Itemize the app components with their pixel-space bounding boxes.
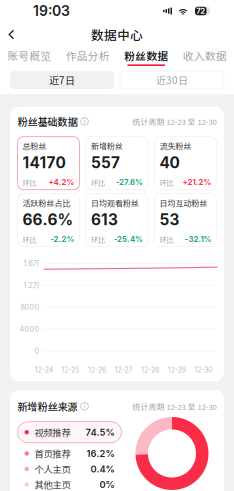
staticText: -2.2% — [50, 235, 74, 244]
staticText: 4000 — [19, 325, 39, 333]
staticText: 统计周期 12-23 至 12-30 — [132, 401, 216, 412]
staticText: 0 — [34, 347, 39, 355]
button[interactable]: 账号概览 — [0, 47, 58, 69]
staticText: 环比 — [159, 234, 173, 244]
staticText: 1.2万 — [23, 281, 39, 290]
staticText: 66.6% — [22, 210, 73, 229]
button[interactable]: 近30日 — [120, 71, 224, 89]
button[interactable]: 粉丝数据 — [117, 47, 175, 69]
button[interactable]: 近7日 — [10, 71, 114, 89]
staticText: i — [83, 402, 85, 410]
staticText: 环比 — [91, 234, 105, 244]
staticText: 0% — [99, 479, 114, 490]
staticText: 新增粉丝来源 — [17, 399, 77, 414]
staticText: 近7日 — [49, 73, 75, 87]
staticText: 粉丝数据 — [124, 48, 168, 63]
staticText: 12-24 — [35, 366, 53, 374]
staticText: 74.5% — [85, 427, 114, 438]
staticText: 新增粉丝 — [91, 140, 123, 151]
staticText: 环比 — [22, 234, 36, 244]
staticText: 数据中心 — [91, 25, 143, 44]
staticText: 流失粉丝 — [159, 140, 191, 151]
staticText: 个人主页 — [34, 462, 70, 476]
button[interactable]: 其他主页 — [17, 477, 121, 491]
button[interactable]: Back — [0, 22, 23, 46]
staticText: 53 — [159, 210, 179, 229]
staticText: 活跃粉丝占比 — [22, 197, 70, 208]
staticText: 粉丝基础数据 — [17, 114, 77, 129]
button[interactable]: 收入数据 — [175, 47, 234, 69]
staticText: 账号概览 — [7, 48, 51, 63]
staticText: 557 — [91, 153, 120, 172]
staticText: -32.1% — [184, 235, 211, 244]
staticText: 日均互动粉丝 — [159, 197, 207, 208]
staticText: 613 — [91, 210, 118, 229]
staticText: +21.2% — [182, 178, 211, 187]
staticText: -25.4% — [114, 235, 143, 244]
staticText: -27.6% — [116, 178, 143, 187]
staticText: 14170 — [22, 153, 65, 172]
staticText: 12-28 — [141, 366, 159, 374]
staticText: 总粉丝 — [22, 140, 46, 151]
staticText: 视频推荐 — [34, 425, 70, 439]
staticText: 收入数据 — [183, 48, 227, 63]
staticText: 其他主页 — [34, 478, 70, 491]
staticText: i — [83, 117, 85, 125]
button[interactable]: 个人主页 — [17, 461, 121, 477]
staticText: 作品分析 — [66, 48, 110, 63]
staticText: 40 — [159, 153, 179, 172]
staticText: 环比 — [159, 177, 173, 187]
staticText: 环比 — [91, 177, 105, 187]
staticText: 12-29 — [168, 366, 186, 374]
staticText: 72 — [196, 6, 205, 16]
staticText: 近30日 — [156, 73, 188, 87]
staticText: +4.2% — [48, 178, 74, 187]
staticText: 12-27 — [114, 366, 132, 374]
button[interactable]: 作品分析 — [58, 47, 117, 69]
staticText: 统计周期 12-23 至 12-30 — [132, 116, 216, 127]
staticText: 12-25 — [61, 366, 79, 374]
staticText: 环比 — [22, 177, 36, 187]
staticText: 12-26 — [88, 366, 106, 374]
button[interactable]: 视频推荐 — [17, 422, 121, 443]
button[interactable]: 首页推荐 — [17, 446, 121, 461]
staticText: 日均观看粉丝 — [91, 197, 139, 208]
staticText: 1.6万 — [23, 259, 39, 268]
staticText: 16.2% — [86, 448, 114, 459]
staticText: 19:03 — [33, 2, 70, 19]
staticText: 8000 — [20, 303, 39, 311]
staticText: 首页推荐 — [34, 447, 70, 460]
staticText: 0.4% — [90, 463, 114, 475]
staticText: 12-30 — [194, 366, 212, 374]
